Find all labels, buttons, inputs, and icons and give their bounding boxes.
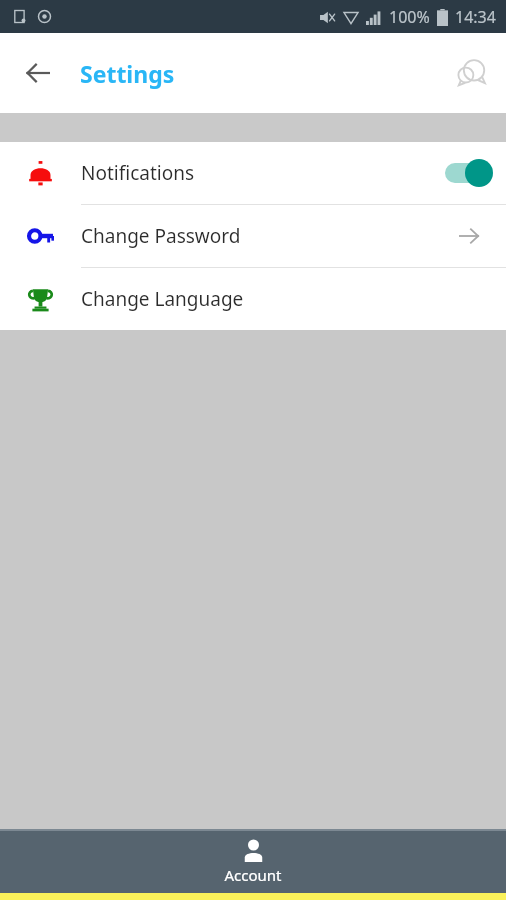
- staticText: Notifications: [81, 160, 432, 186]
- staticText: 14:34: [455, 6, 496, 28]
- button[interactable]: Notifications: [0, 142, 506, 204]
- staticText: 100%: [389, 6, 430, 28]
- staticText: Settings: [80, 58, 175, 89]
- button[interactable]: Notifications toggle: [443, 158, 495, 188]
- staticText: Change Password: [81, 223, 432, 249]
- button[interactable]: Change Password: [0, 205, 506, 267]
- button[interactable]: Back: [14, 49, 62, 97]
- staticText: Change Language: [81, 286, 432, 312]
- button[interactable]: Change Language: [0, 268, 506, 330]
- button[interactable]: Account: [0, 829, 506, 893]
- button[interactable]: Chat: [448, 49, 496, 97]
- staticText: Account: [224, 865, 282, 885]
